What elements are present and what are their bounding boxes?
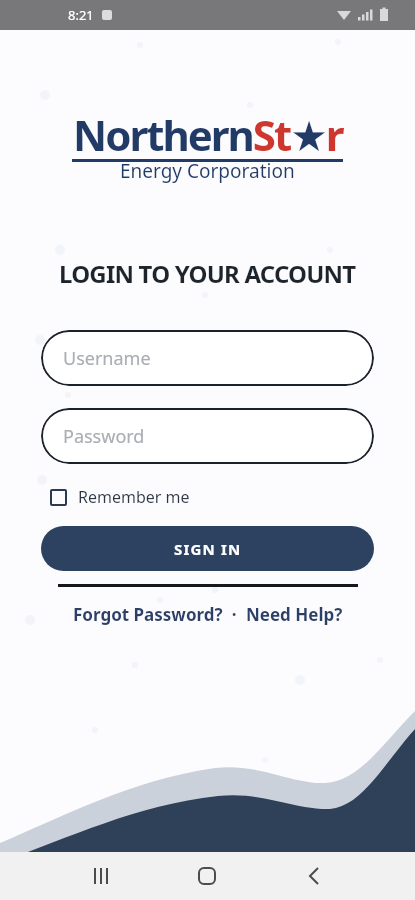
- staticText: Need Help?: [246, 603, 343, 626]
- staticText: Username: [63, 346, 151, 371]
- staticText: Remember me: [78, 486, 190, 508]
- button[interactable]: Remember me: [50, 486, 190, 508]
- staticText: LOGIN TO YOUR ACCOUNT: [59, 257, 356, 290]
- staticText: Forgot Password?: [73, 603, 223, 626]
- staticText: 8:21: [68, 6, 94, 24]
- staticText: ·: [223, 603, 246, 626]
- button[interactable]: [0, 852, 139, 900]
- button[interactable]: Username: [41, 330, 374, 386]
- staticText: Password: [63, 424, 145, 449]
- staticText: Energy Corporation: [120, 158, 295, 184]
- button[interactable]: [139, 852, 277, 900]
- staticText: SIGN IN: [174, 539, 242, 559]
- staticText: NorthernSt★r: [73, 106, 343, 163]
- button[interactable]: Forgot Password?: [73, 603, 223, 626]
- button[interactable]: [277, 852, 415, 900]
- button[interactable]: Need Help?: [246, 603, 343, 626]
- button[interactable]: SIGN IN: [41, 526, 374, 571]
- button[interactable]: Password: [41, 408, 374, 464]
